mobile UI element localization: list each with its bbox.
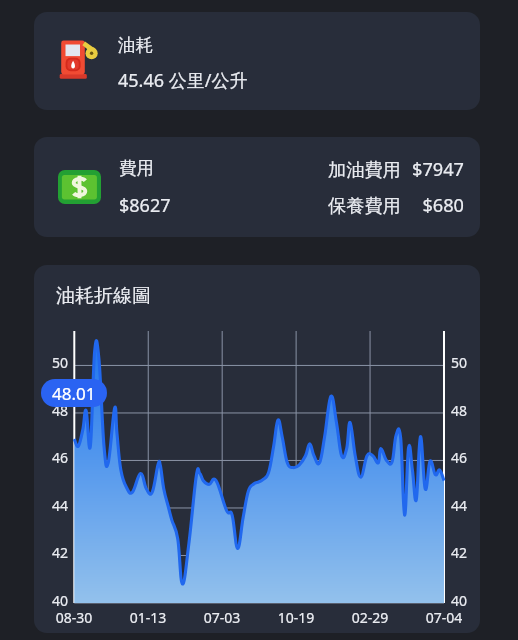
button[interactable]: Cost: [34, 137, 480, 237]
staticText: 07-04: [414, 608, 474, 627]
staticText: 07-03: [192, 608, 252, 627]
button[interactable]: Fuel economy: [34, 12, 480, 110]
staticText: 08-30: [44, 608, 104, 627]
staticText: 01-13: [118, 608, 178, 627]
staticText: 42: [451, 543, 480, 562]
staticText: 油耗: [118, 34, 153, 56]
staticText: 48: [35, 401, 68, 420]
staticText: 44: [35, 496, 68, 515]
other: Cost: [58, 170, 101, 204]
staticText: 42: [35, 543, 68, 562]
staticText: 費用: [119, 157, 154, 179]
staticText: 48: [451, 401, 480, 420]
staticText: $7947: [410, 157, 464, 182]
staticText: 50: [451, 353, 480, 372]
staticText: 02-29: [340, 608, 400, 627]
staticText: 46: [451, 448, 480, 467]
staticText: 油耗折線圖: [56, 284, 151, 308]
staticText: 44: [451, 496, 480, 515]
other: Fuel economy: [58, 39, 102, 83]
staticText: 45.46 公里/公升: [118, 68, 248, 93]
staticText: 48.01: [52, 382, 96, 405]
staticText: 40: [451, 591, 480, 610]
staticText: 40: [35, 591, 68, 610]
staticText: 50: [35, 353, 68, 372]
staticText: $8627: [119, 193, 171, 218]
staticText: 46: [35, 448, 68, 467]
staticText: 保養費用: [328, 194, 401, 217]
staticText: 加油費用: [328, 158, 401, 181]
staticText: $680: [410, 193, 464, 218]
staticText: 10-19: [266, 608, 326, 627]
